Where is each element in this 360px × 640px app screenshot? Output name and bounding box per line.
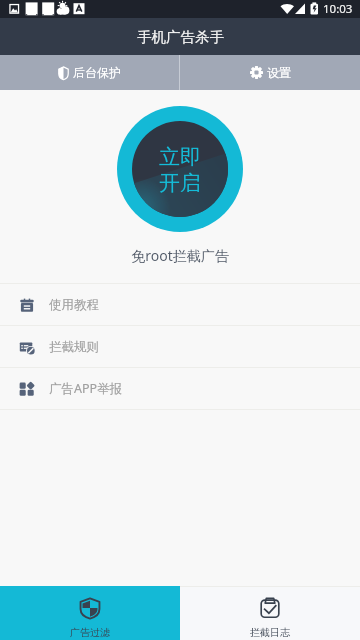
staticText: 免root拦截广告 — [0, 246, 360, 265]
button[interactable]: 拦截日志 — [180, 586, 360, 640]
button[interactable]: 拦截规则 — [0, 326, 360, 367]
staticText: 设置 — [267, 65, 291, 80]
staticText: 使用教程 — [49, 297, 99, 313]
staticText: 立即 开启 — [159, 144, 201, 196]
button[interactable]: 立即开启 — [117, 106, 243, 232]
staticText: 广告过滤 — [70, 626, 110, 639]
button[interactable]: 广告APP举报 — [0, 368, 360, 409]
staticText: 手机广告杀手 — [137, 28, 224, 46]
staticText: 拦截规则 — [49, 339, 99, 355]
staticText: 拦截日志 — [250, 626, 290, 639]
button[interactable]: 设置 — [180, 55, 360, 90]
staticText: 后台保护 — [73, 65, 121, 80]
button[interactable]: 广告过滤 — [0, 586, 180, 640]
staticText: 广告APP举报 — [49, 380, 123, 397]
staticText: 10:03 — [323, 1, 353, 17]
button[interactable]: 使用教程 — [0, 284, 360, 325]
button[interactable]: 后台保护 — [0, 55, 179, 90]
